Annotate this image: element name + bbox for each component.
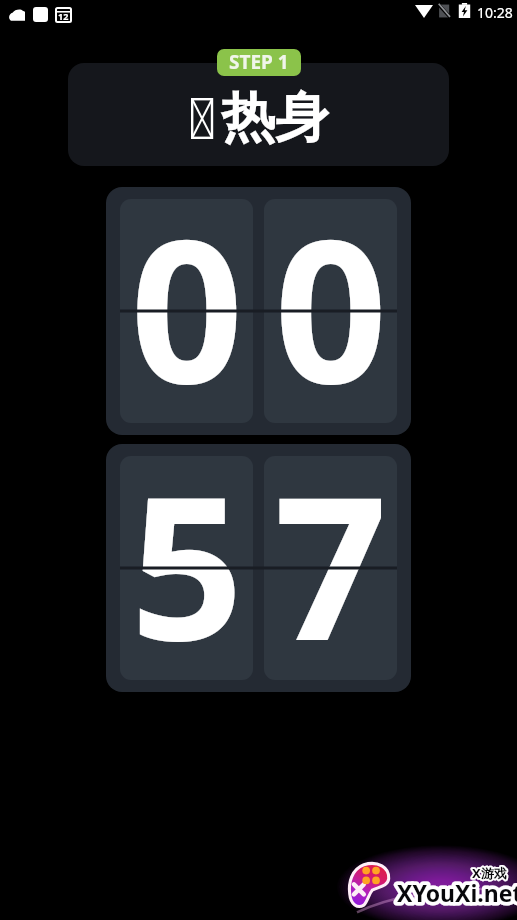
other: XYouXi logo [345,860,392,907]
button[interactable]: STEP 1 [229,49,289,76]
staticText: 热身 [221,84,329,152]
staticText: STEP 1 [229,49,289,75]
staticText: 12 [58,10,69,22]
staticText: 10:28 [477,3,513,22]
staticText: 0 [130,199,244,395]
button[interactable]: 热身 [68,63,449,166]
staticText: XYouXi.net [397,877,517,908]
staticText: X游戏 [472,864,507,882]
staticText: X游戏 [472,864,507,882]
staticText: XYouXi.net [397,877,517,908]
staticText: 5 [130,456,244,652]
button[interactable]: 0 [106,187,411,435]
staticText: 7 [274,456,388,652]
staticText: 0 [274,199,388,395]
button[interactable]: 5 [106,444,411,692]
